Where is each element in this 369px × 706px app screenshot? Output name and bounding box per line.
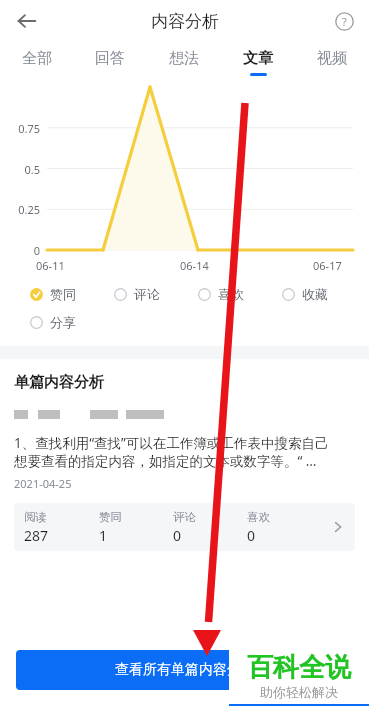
staticText: 助你轻松解决 xyxy=(260,684,338,700)
button[interactable]: 视频 xyxy=(295,42,369,82)
button[interactable]: 喜欢 xyxy=(198,286,282,302)
staticText: 0.75 xyxy=(0,121,40,136)
staticText: 2021-04-25 xyxy=(14,476,72,491)
staticText: 阅读 xyxy=(24,510,47,524)
staticText: 赞同 xyxy=(99,510,122,524)
button[interactable]: 赞同 xyxy=(30,286,114,302)
staticText: 喜欢 xyxy=(247,510,270,524)
staticText: 1、查找利用“查找”可以在工作簿或工作表中搜索自己 xyxy=(14,434,329,452)
staticText: 想法 xyxy=(169,49,199,68)
button[interactable]: 回答 xyxy=(73,42,147,82)
button[interactable]: 评论 xyxy=(114,286,198,302)
button[interactable]: 阅读 xyxy=(14,503,355,551)
staticText: 评论 xyxy=(134,286,160,302)
staticText: 0 xyxy=(0,243,40,258)
staticText: 百科全说 xyxy=(247,651,351,684)
staticText: 06-17 xyxy=(313,258,342,273)
staticText: 0.25 xyxy=(0,202,40,217)
staticText: 分享 xyxy=(50,314,76,330)
button[interactable]: 全部 xyxy=(0,42,73,82)
staticText: 文章 xyxy=(243,49,273,68)
staticText: 收藏 xyxy=(302,286,328,302)
button[interactable]: 想法 xyxy=(147,42,221,82)
staticText: 喜欢 xyxy=(218,286,244,302)
staticText: 0.5 xyxy=(0,162,40,177)
button[interactable]: 收藏 xyxy=(282,286,366,302)
button[interactable]: 文章 xyxy=(221,42,295,82)
staticText: 内容分析 xyxy=(151,11,219,32)
staticText: 评论 xyxy=(173,510,196,524)
button[interactable]: Back xyxy=(10,4,44,38)
staticText: 全部 xyxy=(22,49,52,68)
button[interactable]: Help xyxy=(327,4,361,38)
staticText: 0 xyxy=(173,526,182,545)
staticText: 06-14 xyxy=(180,258,209,273)
staticText: 1 xyxy=(99,526,108,545)
staticText: 287 xyxy=(24,526,49,545)
staticText: 单篇内容分析 xyxy=(14,373,104,392)
staticText: 查看所有单篇内容分析 xyxy=(115,661,255,679)
staticText: ? xyxy=(342,14,347,29)
button[interactable]: 分享 xyxy=(30,314,114,330)
button[interactable]: 查看所有单篇内容分析 xyxy=(16,650,353,690)
staticText: 赞同 xyxy=(50,286,76,302)
staticText: 06-11 xyxy=(36,258,65,273)
staticText: 回答 xyxy=(95,49,125,68)
staticText: 想要查看的指定内容，如指定的文本或数字等。“ … xyxy=(14,452,317,470)
staticText: 视频 xyxy=(317,49,347,68)
staticText: 0 xyxy=(247,526,256,545)
